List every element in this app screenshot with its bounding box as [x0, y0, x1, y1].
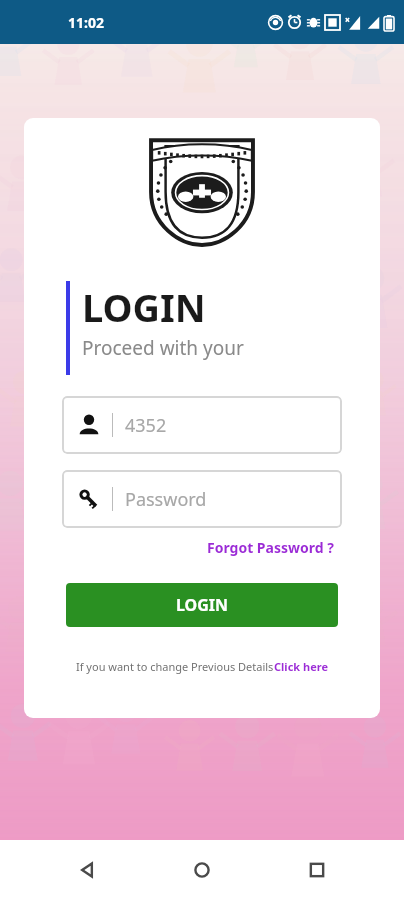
staticText: 11:02 — [68, 13, 104, 32]
button[interactable]: Forgot Password ? — [205, 536, 336, 559]
button[interactable]: Home — [174, 842, 230, 898]
staticText: If you want to change Previous Details — [76, 659, 274, 674]
staticText: Proceed with your — [82, 335, 244, 361]
button[interactable]: LOGIN — [66, 583, 338, 627]
staticText: 4352 — [125, 413, 167, 438]
button[interactable]: Recents — [289, 842, 345, 898]
staticText: Click here — [274, 659, 328, 674]
staticText: LOGIN — [176, 594, 229, 616]
staticText: Forgot Password ? — [207, 538, 334, 557]
button[interactable]: Password — [62, 470, 342, 528]
staticText: Password — [125, 487, 207, 512]
button[interactable]: 4352 — [62, 396, 342, 454]
button[interactable]: Back — [59, 842, 115, 898]
staticText: LOGIN — [82, 281, 206, 333]
button[interactable]: Click here — [274, 659, 328, 674]
